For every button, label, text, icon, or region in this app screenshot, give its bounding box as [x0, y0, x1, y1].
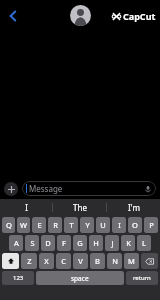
staticText: CapCut	[123, 10, 156, 22]
staticText: P	[149, 220, 154, 230]
staticText: I	[118, 220, 121, 230]
button[interactable]: S	[25, 235, 39, 251]
button[interactable]: G	[73, 235, 87, 251]
staticText: return	[133, 274, 151, 282]
button[interactable]: I'm	[107, 199, 160, 216]
button[interactable]: Backspace	[141, 253, 158, 269]
button[interactable]: K	[121, 235, 135, 251]
staticText: H	[93, 238, 99, 248]
button[interactable]: C	[56, 253, 71, 269]
button[interactable]: U	[96, 217, 110, 233]
staticText: C	[61, 256, 66, 266]
button[interactable]: Q	[2, 217, 15, 233]
button[interactable]: J	[105, 235, 119, 251]
button[interactable]: M	[124, 253, 139, 269]
button[interactable]: Shift	[2, 253, 19, 269]
button[interactable]: D	[41, 235, 55, 251]
staticText: J	[111, 238, 114, 248]
staticText: 123	[13, 274, 24, 282]
staticText: X	[44, 256, 49, 266]
button[interactable]: A	[9, 235, 23, 251]
staticText: Message	[29, 183, 63, 194]
staticText: K	[126, 238, 131, 248]
button[interactable]: X	[39, 253, 54, 269]
staticText: I'm	[128, 202, 140, 213]
button[interactable]: Z	[21, 253, 37, 269]
button[interactable]: T	[64, 217, 78, 233]
staticText: U	[100, 220, 106, 230]
staticText: S	[30, 238, 35, 248]
button[interactable]: L	[137, 235, 151, 251]
button[interactable]: space	[36, 271, 124, 285]
staticText: W	[20, 220, 27, 230]
staticText: The	[73, 202, 87, 213]
button[interactable]: I	[112, 217, 126, 233]
staticText: space	[71, 274, 89, 283]
button[interactable]: H	[89, 235, 103, 251]
staticText: A	[14, 238, 19, 248]
staticText: N	[112, 256, 118, 266]
button[interactable]: The	[53, 199, 106, 216]
staticText: O	[132, 220, 138, 230]
button[interactable]: O	[128, 217, 142, 233]
staticText: E	[37, 220, 42, 230]
button[interactable]: 123	[2, 271, 34, 285]
staticText: V	[78, 256, 83, 266]
button[interactable]: Back	[2, 5, 24, 27]
button[interactable]: return	[126, 271, 158, 285]
button[interactable]: Add attachment	[4, 182, 18, 196]
staticText: F	[62, 238, 66, 248]
staticText: Y	[85, 220, 90, 230]
staticText: B	[95, 256, 100, 266]
staticText: D	[45, 238, 51, 248]
staticText: I	[25, 202, 28, 213]
other: Voice message	[144, 185, 152, 193]
button[interactable]: I	[0, 199, 52, 216]
button[interactable]: F	[57, 235, 71, 251]
button[interactable]: Contact avatar	[70, 5, 91, 26]
staticText: G	[77, 238, 83, 248]
staticText: R	[53, 220, 58, 230]
button[interactable]: E	[32, 217, 46, 233]
button[interactable]: R	[48, 217, 62, 233]
staticText: M	[128, 256, 135, 266]
button[interactable]: Message	[22, 181, 156, 196]
button[interactable]: W	[17, 217, 30, 233]
button[interactable]: Y	[80, 217, 94, 233]
button[interactable]: V	[73, 253, 88, 269]
staticText: Q	[6, 220, 12, 230]
button[interactable]: N	[107, 253, 122, 269]
button[interactable]: CapCut	[112, 10, 156, 22]
staticText: T	[69, 220, 74, 230]
staticText: L	[142, 238, 146, 248]
staticText: Z	[27, 256, 32, 266]
button[interactable]: P	[144, 217, 158, 233]
button[interactable]: B	[90, 253, 105, 269]
